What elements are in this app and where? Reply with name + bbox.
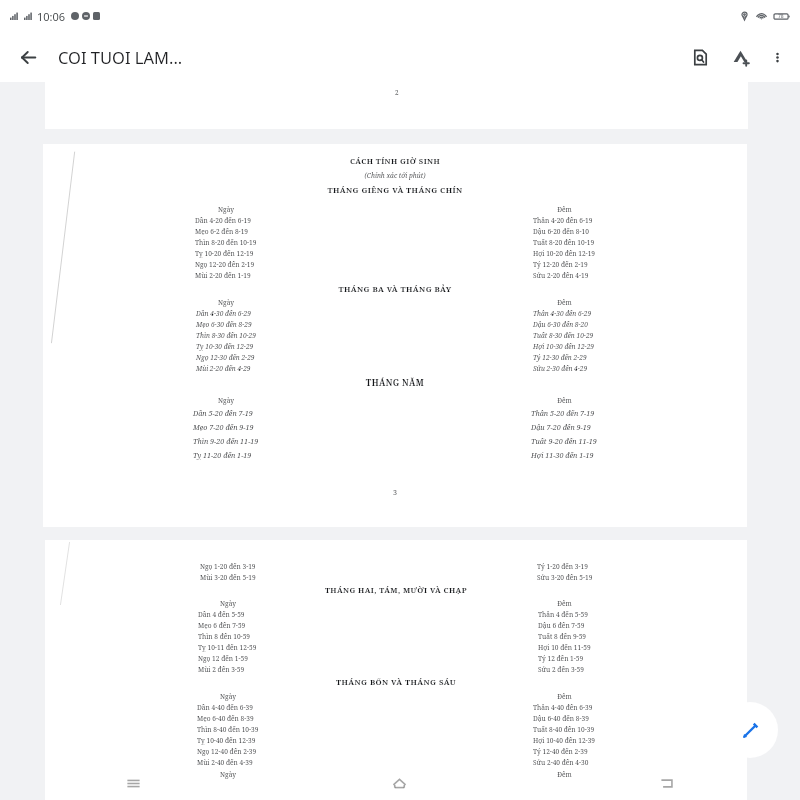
button[interactable]: Recents	[0, 766, 266, 800]
staticText: Tuất 9-20 đến 11-19	[531, 436, 597, 446]
staticText: Tuất 8-20 đến 10-19	[533, 238, 595, 247]
staticText: 10:06	[37, 9, 66, 24]
button[interactable]: Home	[266, 766, 533, 800]
staticText: Ngày	[220, 770, 236, 779]
staticText: Tý 12-20 đến 2-19	[533, 260, 588, 269]
staticText: Thân 4 đến 5-59	[538, 610, 588, 619]
staticText: Ngọ 1-20 đến 3-19	[200, 562, 256, 571]
staticText: 2	[395, 88, 399, 97]
staticText: (Chính xác tới phút)	[57, 171, 733, 180]
staticText: Hợi 10-20 đến 12-19	[533, 249, 596, 258]
staticText: Ngọ 12-20 đến 2-19	[195, 260, 255, 269]
button[interactable]: Back	[533, 766, 800, 800]
staticText: Mẹo 6-2 đến 8-19	[195, 227, 249, 236]
staticText: Tuất 8-40 đến 10-39	[533, 725, 595, 734]
staticText: Tỵ 10-30 đến 12-29	[196, 342, 254, 351]
staticText: Thìn 8-20 đến 10-19	[195, 238, 257, 247]
staticText: Dậu 6-20 đến 8-10	[533, 227, 589, 236]
staticText: COI TUOI LAM...	[58, 46, 680, 68]
staticText: Dần 5-20 đến 7-19	[193, 408, 253, 418]
staticText: Hợi 10-30 đến 12-29	[533, 342, 595, 351]
staticText: Đêm	[557, 770, 572, 779]
staticText: Dậu 6 đến 7-59	[538, 621, 585, 630]
staticText: 78	[778, 13, 784, 20]
button[interactable]: Edit	[722, 702, 778, 758]
staticText: Tý 12-40 đến 2-39	[533, 747, 588, 756]
staticText: Dậu 6-40 đến 8-39	[533, 714, 589, 723]
staticText: Tý 12-30 đến 2-29	[533, 353, 587, 362]
staticText: Tuất 8-30 đến 10-29	[533, 331, 594, 340]
staticText: Thân 4-40 đến 6-39	[533, 703, 593, 712]
button[interactable]: Save to Drive	[720, 37, 760, 77]
button[interactable]: More options	[760, 40, 794, 74]
staticText: CÁCH TÍNH GIỜ SINH	[57, 156, 733, 166]
staticText: Tỵ 11-20 đến 1-19	[193, 450, 252, 460]
staticText: Thân 4-30 đến 6-29	[533, 309, 592, 318]
staticText: Dậu 7-20 đến 9-19	[531, 422, 591, 432]
staticText: Thân 4-20 đến 6-19	[533, 216, 593, 225]
staticText: Đêm	[557, 692, 572, 701]
staticText: Tỵ 10-20 đến 12-19	[195, 249, 254, 258]
staticText: Ngày	[220, 599, 236, 608]
staticText: Mẹo 7-20 đến 9-19	[193, 422, 254, 432]
button[interactable]: Find in document	[680, 37, 720, 77]
staticText: THÁNG NĂM	[57, 377, 733, 388]
staticText: Ngày	[218, 298, 234, 307]
staticText: Ngày	[220, 692, 236, 701]
staticText: 3	[57, 487, 733, 497]
staticText: Đêm	[557, 205, 572, 214]
staticText: Ngày	[218, 205, 234, 214]
staticText: Ngày	[218, 396, 234, 405]
staticText: Tý 12 đến 1-59	[538, 654, 584, 663]
staticText: Sửu 3-20 đến 5-19	[537, 573, 593, 582]
staticText: THÁNG BA VÀ THÁNG BẢY	[57, 284, 733, 295]
staticText: Tỵ 10-40 đến 12-39	[197, 736, 256, 745]
staticText: Mùi 2 đến 3-59	[198, 665, 245, 674]
staticText: THÁNG GIÊNG VÀ THÁNG CHÍN	[57, 185, 733, 196]
staticText: Thìn 8 đến 10-59	[198, 632, 251, 641]
staticText: Đêm	[557, 298, 572, 307]
staticText: Sửu 2-40 đến 4-30	[533, 758, 589, 767]
staticText: Đêm	[557, 599, 572, 608]
staticText: Dần 4-40 đến 6-39	[197, 703, 253, 712]
staticText: THÁNG BỐN VÀ THÁNG SÁU	[59, 677, 733, 688]
staticText: Dần 4 đến 5-59	[198, 610, 245, 619]
staticText: Ngọ 12-30 đến 2-29	[196, 353, 255, 362]
staticText: Mẹo 6-40 đến 8-39	[197, 714, 254, 723]
staticText: Tỵ 10-11 đến 12-59	[198, 643, 257, 652]
staticText: THÁNG HAI, TÁM, MƯỜI VÀ CHẠP	[59, 585, 733, 595]
staticText: Đêm	[557, 396, 572, 405]
staticText: Sửu 2-20 đến 4-19	[533, 271, 589, 280]
staticText: Ngọ 12-40 đến 2-39	[197, 747, 257, 756]
staticText: Mùi 2-40 đến 4-39	[197, 758, 253, 767]
staticText: Tuất 8 đến 9-59	[538, 632, 587, 641]
staticText: Mẹo 6 đến 7-59	[198, 621, 246, 630]
staticText: Hợi 11-30 đến 1-19	[531, 450, 594, 460]
staticText: Dậu 6-30 đến 8-20	[533, 320, 588, 329]
staticText: Sửu 2 đến 3-59	[538, 665, 584, 674]
staticText: Mùi 2-20 đến 1-19	[195, 271, 251, 280]
button[interactable]: Back	[8, 37, 48, 77]
staticText: Thân 5-20 đến 7-19	[531, 408, 595, 418]
staticText: Mẹo 6-30 đến 8-29	[196, 320, 252, 329]
staticText: Hợi 10-40 đến 12-39	[533, 736, 596, 745]
staticText: Mùi 2-20 đến 4-29	[196, 364, 251, 373]
staticText: Mùi 3-20 đến 5-19	[200, 573, 256, 582]
staticText: Ngọ 12 đến 1-59	[198, 654, 248, 663]
staticText: Dần 4-20 đến 6-19	[195, 216, 251, 225]
staticText: Hợi 10 đến 11-59	[538, 643, 591, 652]
staticText: Dần 4-30 đến 6-29	[196, 309, 251, 318]
staticText: Thìn 9-20 đến 11-19	[193, 436, 259, 446]
staticText: Tý 1-20 đến 3-19	[537, 562, 588, 571]
staticText: Thìn 8-40 đến 10-39	[197, 725, 259, 734]
staticText: Thìn 8-30 đến 10-29	[196, 331, 256, 340]
staticText: Sửu 2-30 đến 4-29	[533, 364, 588, 373]
